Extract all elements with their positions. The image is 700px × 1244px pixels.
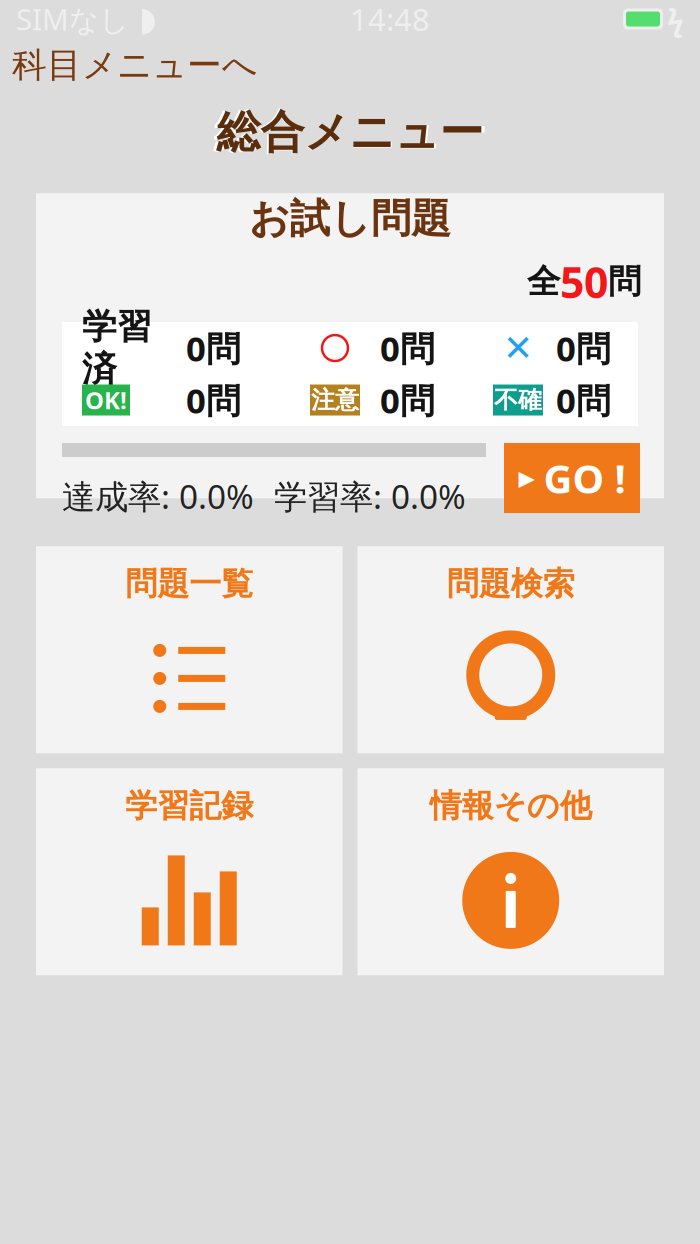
staticText: 0問 [556,377,611,423]
staticText: 0問 [380,325,435,371]
staticText: 問 [608,261,641,302]
staticText: 全 [527,261,560,302]
staticText: 0問 [186,325,241,371]
staticText: 不確 [494,385,542,415]
button[interactable]: 問題一覧 [36,546,342,753]
staticText: 注意 [311,385,359,415]
staticText: ◗ [139,0,157,38]
staticText: 情報その他 [430,786,592,826]
button[interactable]: 問題検索 [357,546,664,753]
staticText: SIMなし [16,0,129,38]
staticText: GO ! [543,451,625,505]
button[interactable]: 科目メニューへ [0,40,269,91]
staticText: 14:48 [350,0,430,39]
button[interactable]: 情報その他 [357,768,664,975]
staticText: 問題検索 [447,564,575,604]
staticText: 0問 [556,325,611,371]
button[interactable]: ▶ [504,443,640,513]
staticText: 総合メニュー [216,105,483,159]
staticText: 0問 [380,377,435,423]
staticText: 科目メニューへ [12,44,257,87]
staticText: ✕ [503,328,533,368]
button[interactable]: 学習記録 [36,768,342,975]
staticText: お試し問題 [249,194,451,243]
staticText: ϟ [667,0,684,39]
staticText: 問題一覧 [125,564,253,604]
staticText: 総合メニュー [213,105,486,160]
staticText: 学習済 [82,305,152,391]
staticText: OK! [85,384,127,416]
staticText: 0問 [186,377,241,423]
staticText: 学習記録 [125,786,253,826]
staticText: 達成率: 0.0% [62,474,254,518]
staticText: ▶ [518,466,534,490]
staticText: 50 [560,253,608,310]
staticText: 学習率: 0.0% [274,474,466,518]
